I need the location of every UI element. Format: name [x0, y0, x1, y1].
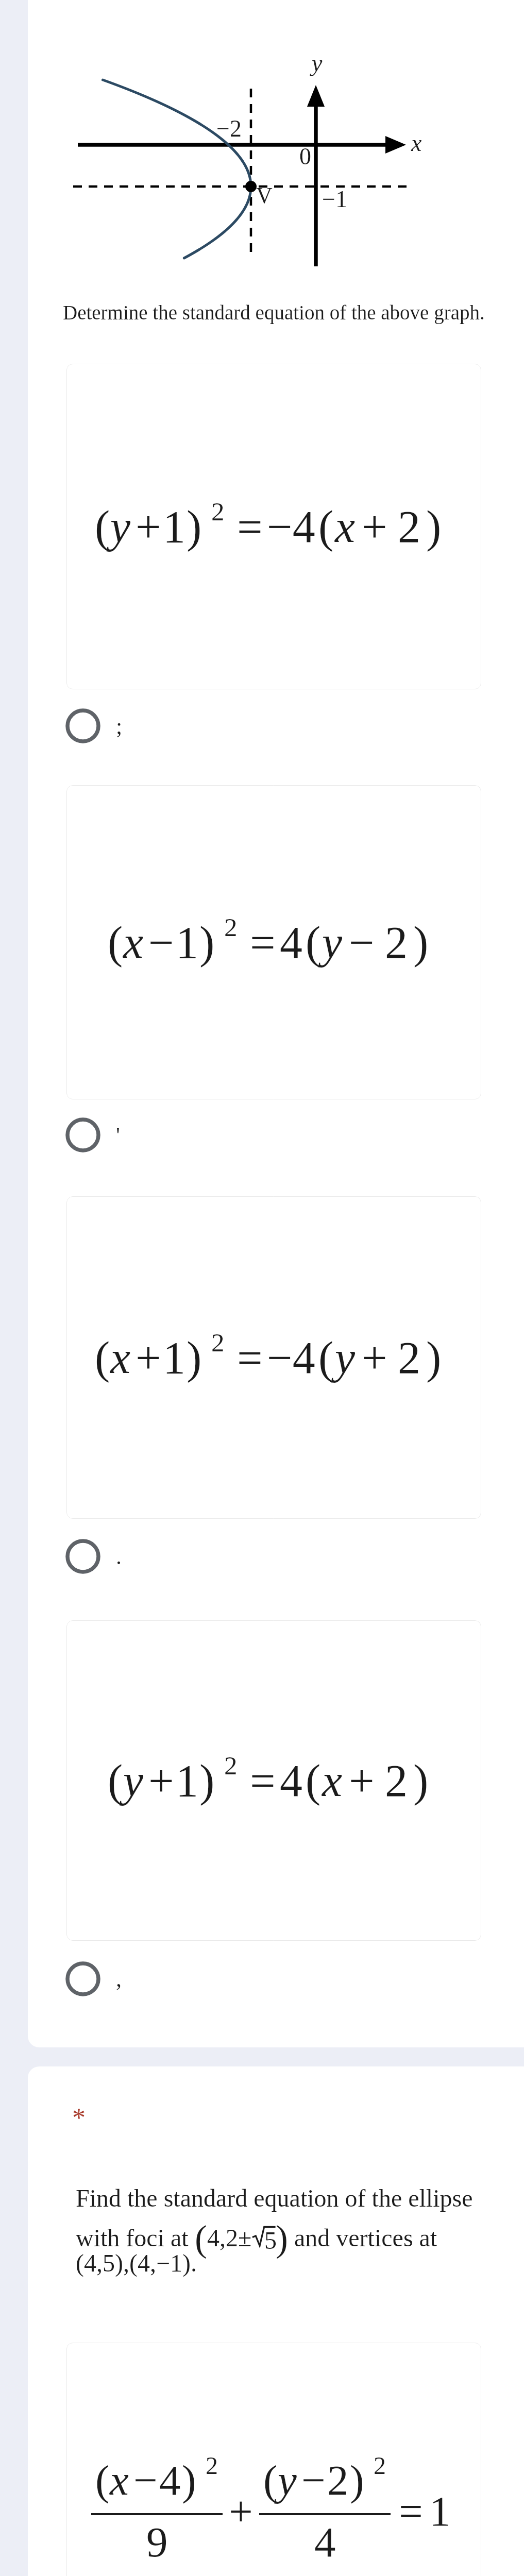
- staticText: 2: [327, 2456, 349, 2504]
- staticText: y: [123, 1756, 144, 1806]
- staticText: x: [110, 1333, 131, 1383]
- staticText: =: [250, 918, 276, 968]
- staticText: 5: [264, 2227, 277, 2254]
- staticText: y: [322, 918, 343, 968]
- staticText: x: [110, 2456, 129, 2504]
- staticText: =: [237, 502, 263, 552]
- staticText: ;: [116, 714, 123, 739]
- staticText: 2: [374, 2452, 386, 2479]
- staticText: y: [278, 2456, 297, 2504]
- staticText: 4: [280, 1756, 302, 1806]
- staticText: −: [133, 2456, 158, 2504]
- staticText: 1: [163, 1333, 185, 1383]
- staticText: x: [322, 1756, 343, 1806]
- button[interactable]: (: [66, 1196, 481, 1519]
- staticText: ): [199, 918, 215, 968]
- staticText: (4,5),(4,−1).: [76, 2249, 197, 2277]
- button[interactable]: ': [64, 1104, 482, 1166]
- staticText: −: [148, 918, 174, 968]
- staticText: ): [426, 502, 442, 552]
- staticText: 1: [163, 502, 185, 552]
- staticText: (: [263, 2456, 278, 2504]
- staticText: V: [256, 183, 273, 208]
- staticText: +: [362, 502, 387, 552]
- staticText: ): [413, 1756, 429, 1806]
- staticText: 2: [224, 1751, 238, 1781]
- staticText: 0: [299, 143, 311, 170]
- staticText: 1: [429, 2487, 451, 2535]
- staticText: 4: [280, 918, 302, 968]
- button[interactable]: ,: [64, 1948, 482, 2010]
- staticText: x: [411, 130, 422, 156]
- staticText: −2: [216, 115, 242, 142]
- staticText: (: [318, 502, 334, 552]
- staticText: Determine the standard equation of the a…: [63, 301, 485, 324]
- staticText: 2: [211, 1328, 225, 1358]
- staticText: 4: [314, 2518, 336, 2566]
- staticText: ): [187, 502, 202, 552]
- staticText: ): [199, 1756, 215, 1806]
- button[interactable]: (: [66, 1620, 481, 1941]
- staticText: (: [95, 1333, 110, 1383]
- staticText: (: [306, 1756, 321, 1806]
- staticText: *: [72, 2103, 86, 2133]
- staticText: +: [148, 1756, 174, 1806]
- staticText: Find the standard equation of the ellips…: [76, 2184, 473, 2212]
- staticText: 2: [398, 502, 420, 552]
- staticText: (: [306, 918, 321, 968]
- staticText: and vertices at: [288, 2224, 437, 2251]
- staticText: 4: [159, 2456, 181, 2504]
- staticText: with foci at: [76, 2224, 195, 2251]
- staticText: −4: [267, 1333, 315, 1383]
- staticText: y: [312, 50, 323, 76]
- staticText: x: [335, 502, 356, 552]
- staticText: 2: [224, 913, 238, 942]
- staticText: −1: [322, 186, 347, 212]
- staticText: (: [108, 1756, 123, 1806]
- staticText: (: [95, 2456, 110, 2504]
- staticText: +: [229, 2487, 253, 2535]
- staticText: =: [399, 2487, 423, 2535]
- staticText: (: [108, 918, 123, 968]
- button[interactable]: ;: [64, 695, 482, 757]
- staticText: .: [116, 1544, 122, 1569]
- staticText: 2: [206, 2452, 218, 2479]
- staticText: ): [413, 918, 429, 968]
- staticText: 9: [146, 2518, 168, 2566]
- button[interactable]: .: [64, 1526, 482, 1587]
- staticText: (: [195, 2218, 207, 2259]
- staticText: +: [349, 1756, 375, 1806]
- staticText: −: [301, 2456, 326, 2504]
- staticText: −: [349, 918, 375, 968]
- staticText: 2: [211, 497, 225, 527]
- staticText: =: [250, 1756, 276, 1806]
- staticText: y: [110, 502, 131, 552]
- staticText: 1: [176, 1756, 198, 1806]
- staticText: (: [95, 502, 110, 552]
- staticText: ): [182, 2456, 196, 2504]
- staticText: 2: [398, 1333, 420, 1383]
- staticText: +: [362, 1333, 387, 1383]
- button[interactable]: (: [66, 2343, 481, 2576]
- staticText: +: [136, 1333, 161, 1383]
- staticText: ): [187, 1333, 202, 1383]
- staticText: ': [116, 1123, 120, 1148]
- staticText: x: [123, 918, 144, 968]
- staticText: ): [426, 1333, 442, 1383]
- button[interactable]: (: [66, 364, 481, 689]
- staticText: ): [350, 2456, 364, 2504]
- staticText: +: [136, 502, 161, 552]
- staticText: −4: [267, 502, 315, 552]
- staticText: 2: [385, 1756, 408, 1806]
- button[interactable]: (: [66, 785, 481, 1099]
- staticText: y: [335, 1333, 356, 1383]
- staticText: ): [276, 2218, 288, 2259]
- staticText: 2: [385, 918, 408, 968]
- staticText: (: [318, 1333, 334, 1383]
- staticText: 4,2±: [207, 2224, 252, 2251]
- staticText: ,: [116, 1967, 122, 1992]
- staticText: =: [237, 1333, 263, 1383]
- staticText: 1: [176, 918, 198, 968]
